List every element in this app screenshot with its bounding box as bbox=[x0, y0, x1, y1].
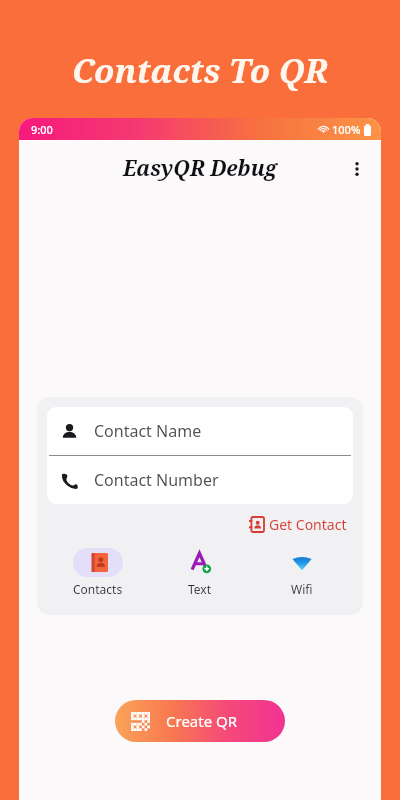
staticText: Contacts To QR bbox=[72, 48, 328, 93]
button[interactable]: Get Contact bbox=[247, 513, 349, 536]
staticText: 100% bbox=[332, 122, 361, 137]
staticText: Wifi bbox=[291, 581, 313, 597]
staticText: Get Contact bbox=[269, 515, 347, 534]
button[interactable]: Wifi bbox=[251, 546, 353, 599]
button[interactable]: Text bbox=[149, 546, 251, 599]
button[interactable]: Contact Number bbox=[47, 456, 353, 504]
staticText: Create QR bbox=[166, 711, 238, 731]
button[interactable]: Contacts bbox=[47, 546, 149, 599]
staticText: Contact Number bbox=[94, 469, 219, 491]
staticText: EasyQR Debug bbox=[123, 154, 277, 183]
staticText: Text bbox=[188, 581, 212, 597]
staticText: 9:00 bbox=[31, 122, 53, 137]
button[interactable]: Contact Name bbox=[47, 407, 353, 455]
staticText: Contacts bbox=[73, 581, 123, 597]
staticText: Contact Name bbox=[94, 420, 202, 442]
button[interactable]: Create QR bbox=[115, 700, 285, 742]
button[interactable]: More options bbox=[339, 151, 375, 187]
